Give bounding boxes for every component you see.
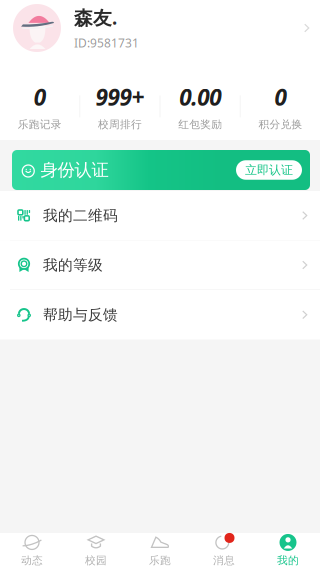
staticText: 动态	[21, 554, 43, 566]
staticText: 校园	[85, 554, 107, 566]
button[interactable]: 校园	[64, 529, 128, 566]
staticText: 校周排行	[98, 118, 142, 131]
staticText: 红包奖励	[178, 118, 222, 131]
staticText: 0	[274, 82, 286, 112]
button[interactable]: 乐跑	[128, 529, 192, 566]
button[interactable]: 动态	[0, 529, 64, 566]
staticText: 身份认证	[40, 159, 108, 181]
button[interactable]: 帮助与反馈	[0, 290, 320, 339]
button[interactable]: 我的二维码	[0, 191, 320, 240]
staticText: 我的等级	[43, 256, 103, 274]
staticText: 999+	[95, 82, 144, 112]
staticText: 立即认证	[245, 163, 293, 177]
button[interactable]: 消息	[192, 529, 256, 566]
staticText: 0.00	[179, 82, 221, 112]
button[interactable]: 我的	[256, 529, 320, 566]
staticText: 森友.	[74, 5, 117, 30]
staticText: 我的二维码	[43, 206, 118, 224]
staticText: 我的	[277, 554, 299, 566]
staticText: 乐跑记录	[18, 118, 62, 131]
staticText: 消息	[213, 554, 235, 566]
staticText: 积分兑换	[258, 118, 302, 131]
staticText: 乐跑	[149, 554, 171, 566]
button[interactable]: 我的等级	[0, 240, 320, 290]
staticText: ID:9581731	[74, 35, 139, 51]
staticText: 帮助与反馈	[43, 306, 118, 324]
staticText: 0	[34, 82, 46, 112]
button[interactable]: 身份认证	[12, 150, 310, 190]
button[interactable]: 森友.	[0, 0, 320, 56]
